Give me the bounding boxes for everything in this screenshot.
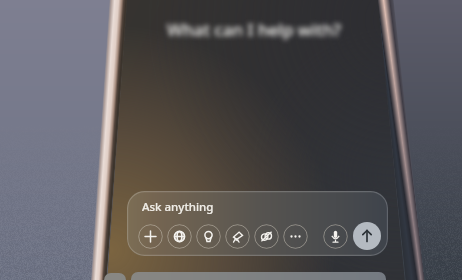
- button[interactable]: Create image: [254, 224, 279, 249]
- button[interactable]: Deep research: [225, 224, 250, 249]
- button[interactable]: More options: [283, 224, 308, 249]
- button[interactable]: Add attachment: [138, 224, 163, 249]
- button[interactable]: Voice input: [323, 224, 348, 249]
- staticText: What can I help with?: [167, 18, 341, 41]
- button[interactable]: Send: [353, 222, 381, 250]
- button[interactable]: Ask anything: [127, 191, 388, 256]
- button[interactable]: Think longer: [196, 224, 221, 249]
- button[interactable]: Search the web: [167, 224, 192, 249]
- staticText: Ask anything: [142, 199, 214, 215]
